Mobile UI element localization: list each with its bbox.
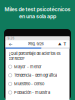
button[interactable]: Tendencia - demográfica [5,71,69,80]
staticText: 9:26 [7,37,14,40]
button[interactable]: Mayor - menor [5,62,69,71]
staticText: Miles de test psicotécnicos [4,6,70,12]
button[interactable]: Text size [62,41,67,47]
staticText: Tendencia - demográfica [14,73,57,78]
staticText: T [63,42,66,46]
staticText: en una sola app [19,13,56,20]
button[interactable]: Report [57,41,62,47]
staticText: ¿Qué porcentaje de aciertos es correcto? [8,51,60,61]
staticText: ← [8,41,12,47]
button[interactable]: Población - muestra [5,88,69,97]
button[interactable]: Muestreo - censo [5,80,69,88]
staticText: Muestreo - censo [14,81,44,86]
button[interactable]: Back [7,41,13,47]
staticText: ▲ [58,42,62,46]
staticText: Preg. 9/26 [27,42,43,46]
staticText: Mayor - menor [14,64,42,69]
staticText: Población - muestra [14,90,50,95]
